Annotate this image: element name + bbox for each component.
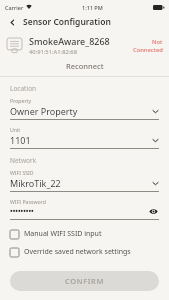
staticText: WIFI SSID xyxy=(10,169,34,176)
button[interactable]: Show password xyxy=(148,206,159,217)
button[interactable]: CONFIRM xyxy=(10,271,159,291)
staticText: WIFI Password xyxy=(10,198,46,205)
staticText: Owner Property xyxy=(10,105,152,117)
button[interactable]: Override saved network settings xyxy=(0,244,169,260)
staticText: Location xyxy=(10,84,37,93)
staticText: 1:11 PM xyxy=(82,4,103,11)
staticText: Manual WIFI SSID input xyxy=(24,229,102,239)
staticText: Override saved network settings xyxy=(24,247,131,257)
staticText: 40:91:51:A1:82:68 xyxy=(29,48,77,56)
staticText: 1101 xyxy=(10,134,152,146)
staticText: Network xyxy=(10,156,37,165)
staticText: Sensor Configuration xyxy=(23,16,111,28)
staticText: MikroTik_22 xyxy=(10,177,152,189)
button[interactable]: WIFI SSID xyxy=(0,169,169,192)
staticText: Property xyxy=(10,97,32,104)
button[interactable]: Reconnect xyxy=(0,61,169,71)
staticText: Carrier xyxy=(5,4,24,11)
staticText: ••••••••• xyxy=(10,207,148,217)
staticText: SmokeAware_8268 xyxy=(29,35,110,47)
staticText: Unit xyxy=(10,126,21,133)
staticText: Reconnect xyxy=(66,61,104,71)
button[interactable]: Property xyxy=(0,97,169,120)
staticText: Not xyxy=(152,38,163,46)
button[interactable]: Back xyxy=(6,16,19,29)
button[interactable]: Unit xyxy=(0,126,169,149)
button[interactable]: Manual WIFI SSID input xyxy=(0,226,169,242)
staticText: Connected xyxy=(133,46,163,54)
staticText: CONFIRM xyxy=(65,276,104,286)
